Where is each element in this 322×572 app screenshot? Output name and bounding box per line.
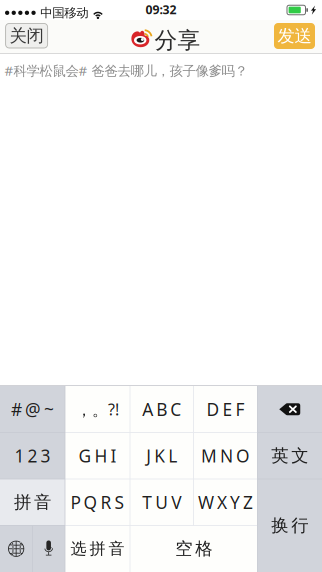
button[interactable]: T U V <box>130 479 193 525</box>
staticText: 分享 <box>154 26 200 54</box>
button[interactable]: 英 文 <box>257 432 322 479</box>
button[interactable]: J K L <box>130 432 193 479</box>
staticText: ，。?! <box>76 399 119 420</box>
button[interactable]: 拼 音 <box>0 479 65 525</box>
staticText: 换 行 <box>271 515 308 536</box>
staticText: # @ ~ <box>11 398 54 421</box>
staticText: 英 文 <box>271 445 308 466</box>
button[interactable]: W X Y Z <box>193 479 257 525</box>
button[interactable]: # @ ~ <box>0 386 65 432</box>
staticText: D E F <box>206 398 244 421</box>
button[interactable]: Delete <box>257 386 322 432</box>
staticText: T U V <box>142 491 181 514</box>
staticText: 中国移动 <box>40 5 88 21</box>
button[interactable]: Next keyboard <box>0 525 32 572</box>
button[interactable]: 发送 <box>274 23 315 49</box>
button[interactable]: M N O <box>193 432 257 479</box>
button[interactable]: 关闭 <box>6 23 48 48</box>
button[interactable]: 空 格 <box>130 525 257 572</box>
button[interactable]: G H I <box>65 432 130 479</box>
button[interactable]: ，。?! <box>65 386 130 432</box>
staticText: J K L <box>146 444 177 467</box>
button[interactable]: A B C <box>130 386 193 432</box>
staticText: P Q R S <box>70 491 124 514</box>
staticText: A B C <box>142 398 181 421</box>
staticText: 关闭 <box>10 25 44 46</box>
staticText: 空 格 <box>175 538 212 559</box>
button[interactable]: P Q R S <box>65 479 130 525</box>
button[interactable]: D E F <box>193 386 257 432</box>
button[interactable]: Dictation <box>32 525 65 572</box>
button[interactable]: 换 行 <box>257 479 322 572</box>
staticText: 选 拼 音 <box>70 539 124 559</box>
staticText: G H I <box>78 444 116 467</box>
staticText: W X Y Z <box>198 491 253 514</box>
staticText: 发送 <box>277 25 311 47</box>
staticText: #科学松鼠会# 爸爸去哪儿，孩子像爹吗？ <box>4 61 247 80</box>
staticText: 1 2 3 <box>14 444 50 467</box>
button[interactable]: 选 拼 音 <box>65 525 130 572</box>
staticText: 09:32 <box>145 1 176 18</box>
staticText: M N O <box>201 444 250 467</box>
staticText: 拼 音 <box>14 492 51 513</box>
button[interactable]: 1 2 3 <box>0 432 65 479</box>
